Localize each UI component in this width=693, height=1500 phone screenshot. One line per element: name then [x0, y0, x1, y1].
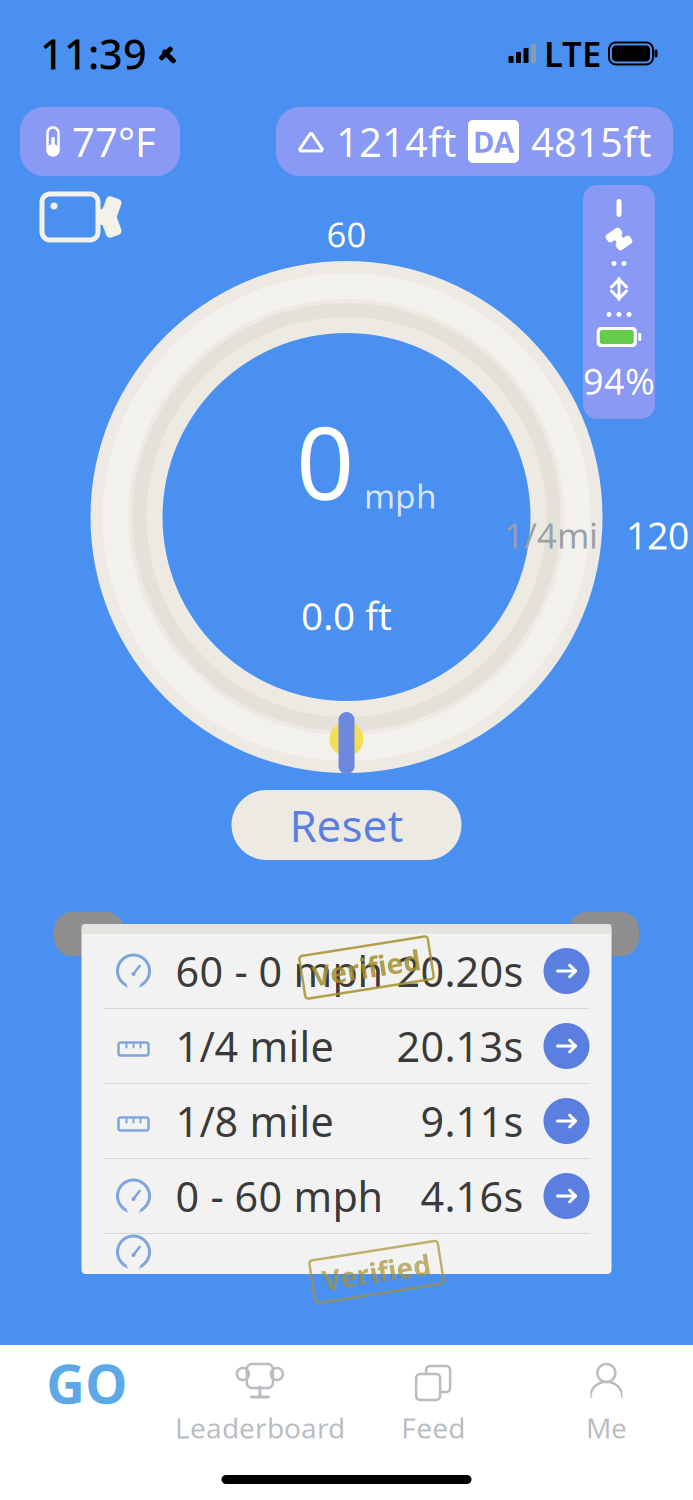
- staticText: Feed: [401, 1409, 465, 1446]
- staticText: Reset: [289, 796, 403, 854]
- staticText: 1214ft: [336, 115, 456, 168]
- staticText: 1/8 mile: [175, 1094, 333, 1148]
- button[interactable]: 1/8 mile: [81, 1084, 611, 1159]
- button[interactable]: 0 - 60 mph: [81, 1159, 611, 1234]
- staticText: 94%: [583, 357, 655, 405]
- button[interactable]: 77°F: [20, 107, 180, 176]
- button[interactable]: GO: [0, 1355, 173, 1446]
- staticText: 11:39: [40, 26, 147, 81]
- staticText: 4.16s: [420, 1169, 523, 1223]
- staticText: GO: [46, 1348, 127, 1418]
- staticText: Leaderboard: [175, 1409, 345, 1446]
- staticText: 0 - 60 mph: [175, 1169, 383, 1223]
- staticText: 0: [296, 393, 354, 528]
- staticText: 20.13s: [396, 1019, 523, 1073]
- staticText: 9.11s: [420, 1094, 523, 1148]
- staticText: Verified: [311, 949, 421, 986]
- staticText: Me: [586, 1409, 627, 1446]
- staticText: 77°F: [72, 115, 156, 168]
- button[interactable]: Me: [520, 1355, 693, 1446]
- button[interactable]: Leaderboard: [173, 1355, 346, 1446]
- button[interactable]: 1/4 mile: [81, 1009, 611, 1084]
- staticText: 4815ft: [531, 115, 651, 168]
- staticText: DA: [473, 122, 514, 161]
- staticText: LTE: [544, 30, 601, 76]
- button[interactable]: 60 - 0 mph: [81, 934, 611, 1009]
- staticText: 120: [626, 510, 689, 560]
- staticText: 0.0 ft: [301, 590, 392, 641]
- staticText: 60 - 0 mph: [175, 944, 383, 998]
- staticText: 1/4 mile: [175, 1019, 333, 1073]
- button[interactable]: Record video: [34, 185, 124, 249]
- button[interactable]: Reset: [231, 790, 461, 860]
- staticText: mph: [364, 473, 437, 518]
- staticText: 60: [326, 211, 366, 257]
- staticText: Verified: [321, 1253, 431, 1291]
- button[interactable]: 1214ft: [276, 107, 673, 176]
- staticText: 20.20s: [396, 944, 523, 998]
- button[interactable]: Feed: [346, 1355, 520, 1446]
- staticText: 1/4mi: [504, 512, 598, 558]
